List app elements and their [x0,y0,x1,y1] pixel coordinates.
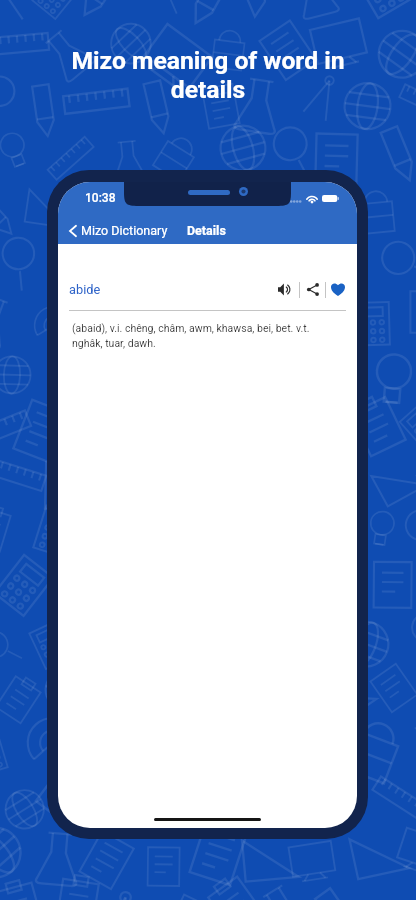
staticText: Mizo Dictionary [81,223,168,238]
button[interactable]: Share [302,279,323,300]
staticText: (abaid), v.i. chêng, châm, awm, khawsa, … [72,322,328,349]
staticText: Details [187,223,226,238]
button[interactable]: abide [69,282,101,297]
button[interactable]: Mizo Dictionary [68,221,169,240]
staticText: 10:38 [85,191,116,205]
button[interactable]: Favourite [327,279,348,300]
button[interactable]: Pronounce [274,279,296,300]
staticText: Mizo meaning of word in details [63,46,353,104]
